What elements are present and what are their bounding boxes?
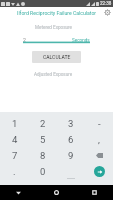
button[interactable]: Enter xyxy=(94,166,105,177)
button[interactable]: 7 xyxy=(0,147,29,163)
staticText: CALCULATE xyxy=(43,54,71,60)
button[interactable]: Back xyxy=(0,185,37,200)
staticText: Metered Exposure xyxy=(35,25,73,30)
button[interactable]: CALCULATE xyxy=(32,51,81,63)
staticText: 9 xyxy=(68,150,74,161)
button[interactable] xyxy=(57,163,85,179)
button[interactable]: 1 xyxy=(0,115,29,131)
button[interactable]: 6 xyxy=(57,131,85,147)
button[interactable]: 5 xyxy=(29,131,57,147)
button[interactable]: 2 xyxy=(23,34,90,44)
staticText: 5 xyxy=(40,134,46,145)
staticText: 7 xyxy=(12,150,18,161)
staticText: , xyxy=(98,134,100,145)
button[interactable]: 3 xyxy=(57,115,85,131)
staticText: Adjusted Exposure xyxy=(34,72,73,77)
staticText: . xyxy=(13,166,16,177)
button[interactable]: 4 xyxy=(0,131,29,147)
button[interactable]: Recent apps xyxy=(75,185,113,200)
button[interactable]: Home xyxy=(37,185,75,200)
button[interactable]: Settings xyxy=(102,7,113,18)
button[interactable]: , xyxy=(85,131,113,147)
button[interactable]: 8 xyxy=(29,147,57,163)
staticText: 1 xyxy=(12,118,18,129)
staticText: 8 xyxy=(40,150,46,161)
staticText: 2 xyxy=(23,37,26,43)
staticText: 22:38 xyxy=(100,1,112,6)
staticText: Ilford Reciprocity Failure Calculator xyxy=(17,10,97,16)
button[interactable]: Backspace xyxy=(85,147,113,163)
staticText: 6 xyxy=(68,134,74,145)
staticText: - xyxy=(98,118,101,129)
button[interactable]: - xyxy=(85,115,113,131)
button[interactable]: . xyxy=(0,163,29,179)
button[interactable]: 9 xyxy=(57,147,85,163)
button[interactable]: Enter xyxy=(85,163,113,179)
button[interactable]: 2 xyxy=(29,115,57,131)
staticText: 0 xyxy=(40,166,46,177)
staticText: Seconds xyxy=(72,38,90,43)
button[interactable]: 0 xyxy=(29,163,57,179)
other: Backspace xyxy=(96,153,103,158)
staticText: 3 xyxy=(68,118,74,129)
staticText: 2 xyxy=(40,118,46,129)
staticText: 4 xyxy=(12,134,18,145)
